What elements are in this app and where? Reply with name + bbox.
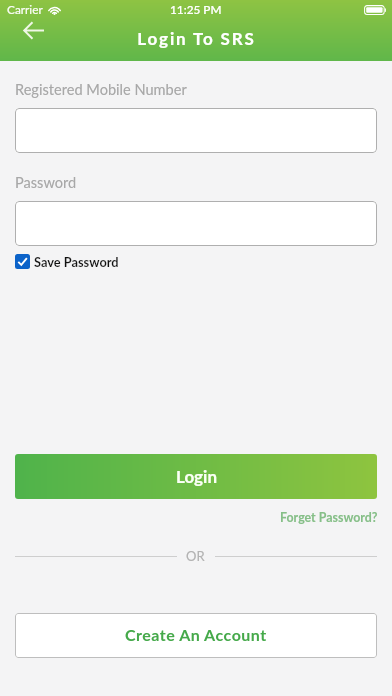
staticText: 11:25 PM bbox=[170, 2, 222, 16]
staticText: Registered Mobile Number bbox=[15, 81, 187, 99]
staticText: Save Password bbox=[34, 254, 119, 269]
staticText: Create An Account bbox=[125, 625, 267, 644]
staticText: Forget Password? bbox=[280, 510, 378, 525]
staticText: Login To SRS bbox=[137, 28, 256, 48]
button[interactable]: Save Password bbox=[15, 253, 119, 270]
button[interactable]: Login bbox=[15, 454, 377, 499]
staticText: Carrier bbox=[7, 2, 43, 16]
button[interactable] bbox=[15, 108, 377, 153]
staticText: Password bbox=[15, 174, 77, 192]
button[interactable]: Create An Account bbox=[15, 613, 377, 658]
staticText: Login bbox=[176, 466, 217, 486]
button[interactable]: Forget Password? bbox=[280, 510, 378, 525]
button[interactable]: Back bbox=[17, 14, 57, 46]
button[interactable] bbox=[15, 201, 377, 246]
staticText: OR bbox=[186, 548, 205, 564]
